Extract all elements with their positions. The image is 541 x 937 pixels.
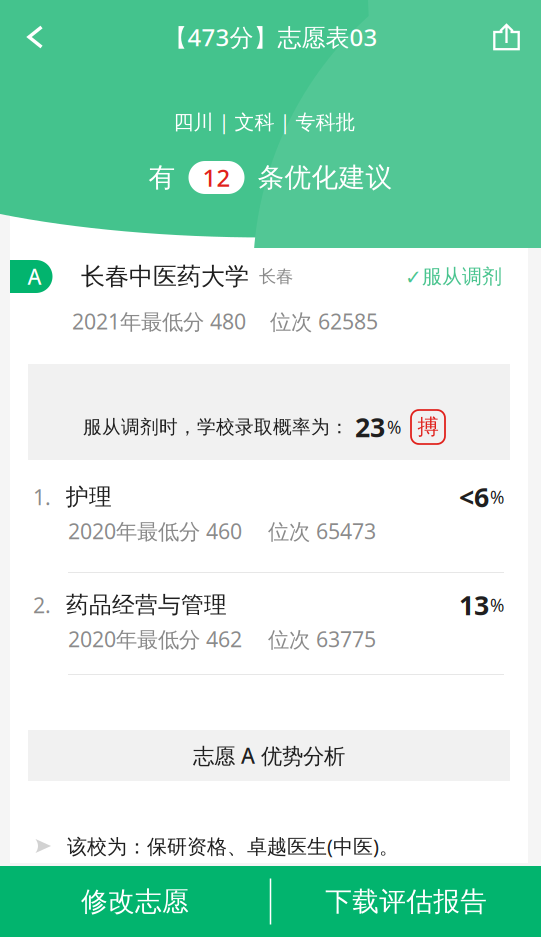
staticText: 服从调剂时，学校录取概率为：: [83, 415, 349, 438]
staticText: 1.: [33, 483, 51, 511]
staticText: <6: [459, 479, 489, 515]
staticText: 2020年最低分 460: [68, 517, 242, 545]
button[interactable]: 下载评估报告: [271, 866, 541, 937]
staticText: 2021年最低分 480 位次 62585: [72, 307, 378, 335]
staticText: ✓服从调剂: [405, 264, 502, 289]
staticText: %: [490, 593, 504, 616]
staticText: 长春中医药大学: [81, 262, 249, 291]
staticText: 四川 | 文科 | 专科批: [173, 108, 355, 135]
button[interactable]: Back: [0, 13, 61, 61]
staticText: 位次 65473: [268, 517, 376, 545]
staticText: 志愿 A 优势分析: [193, 741, 345, 770]
staticText: 长春: [259, 266, 293, 287]
staticText: 药品经营与管理: [66, 591, 227, 619]
staticText: A: [27, 262, 41, 291]
staticText: 护理: [66, 483, 112, 511]
staticText: 修改志愿: [81, 885, 189, 918]
staticText: 该校为：保研资格、卓越医生(中医)。: [67, 833, 399, 859]
staticText: 条优化建议: [257, 161, 392, 194]
staticText: 下载评估报告: [325, 885, 487, 918]
staticText: 位次 63775: [268, 625, 376, 653]
button[interactable]: 修改志愿: [0, 866, 270, 937]
staticText: 有: [148, 161, 175, 194]
staticText: %: [387, 415, 401, 438]
staticText: 搏: [417, 414, 438, 440]
staticText: 2.: [33, 591, 51, 619]
staticText: 2020年最低分 462: [68, 625, 242, 653]
staticText: %: [490, 485, 504, 508]
staticText: 【473分】志愿表03: [163, 21, 377, 53]
staticText: 12: [202, 162, 230, 193]
staticText: 13: [459, 587, 489, 623]
button[interactable]: Share: [477, 11, 541, 62]
staticText: 23: [355, 409, 385, 445]
